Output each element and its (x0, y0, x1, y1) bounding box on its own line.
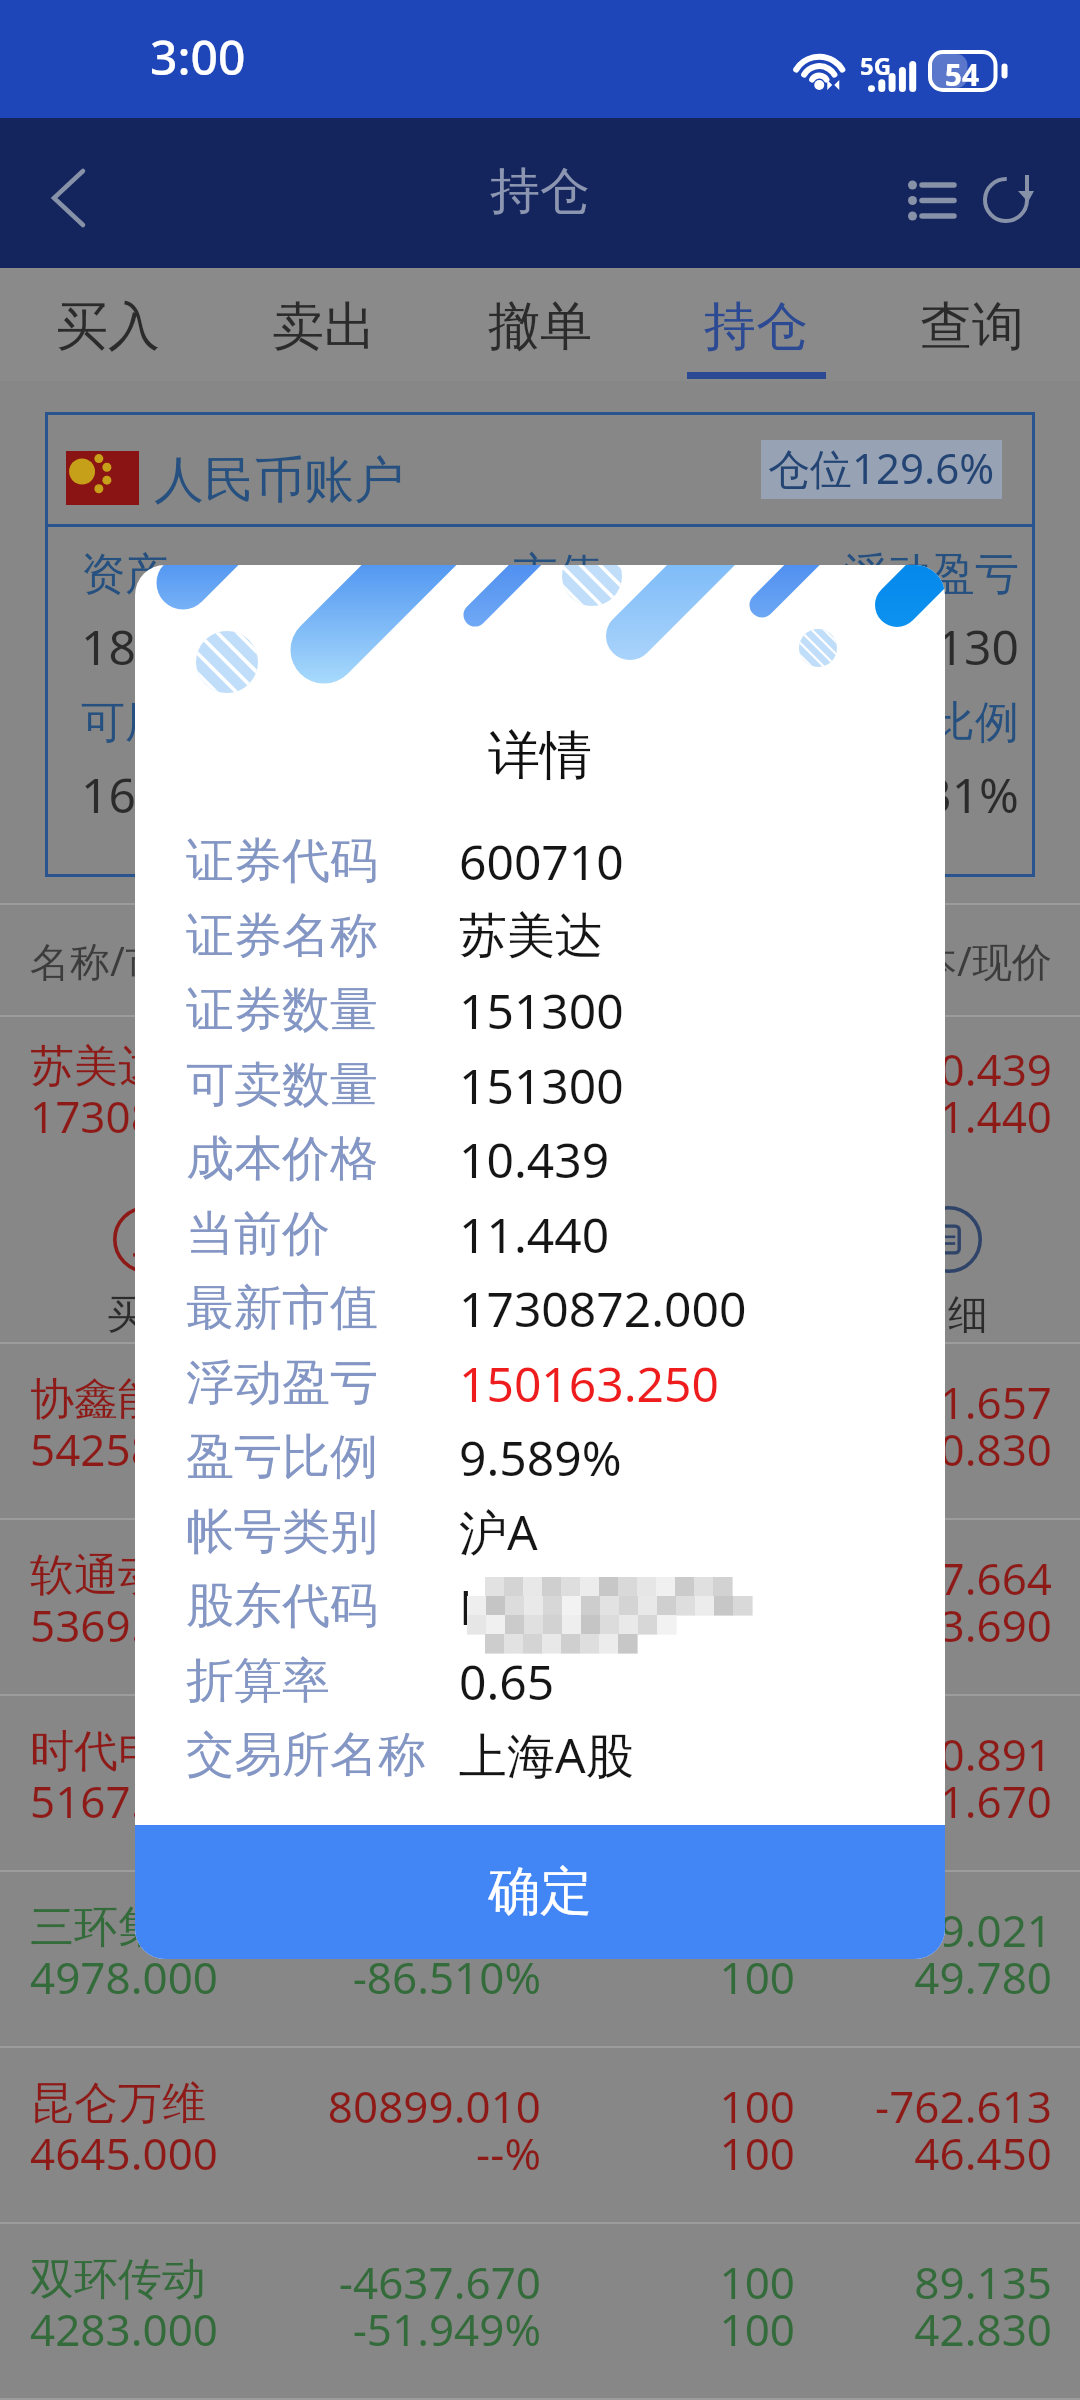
button[interactable]: List view (872, 143, 982, 243)
staticText: 1208.400 (300, 1548, 541, 1608)
staticText: 时代电气 (30, 1724, 206, 1779)
staticText: 51.670 (795, 1771, 1052, 1831)
button[interactable]: 买入 (46, 1206, 247, 1339)
staticText: 行情 (508, 1289, 588, 1339)
staticText: 软通动力 (30, 1548, 206, 1603)
staticText: 证券数量 (186, 980, 459, 1040)
staticText: 帐号类别 (186, 1502, 459, 1562)
staticText: 折算率 (186, 1651, 459, 1711)
staticText: 89.135 (795, 2252, 1052, 2312)
staticText: 三环集团 (30, 1900, 206, 1955)
staticText: 2.631% (716, 762, 1019, 827)
staticText: L 9287 (459, 1574, 682, 1639)
staticText: 10.439 (459, 1127, 610, 1192)
staticText: 最新市值 (186, 1278, 459, 1338)
staticText: 151300 (459, 978, 624, 1043)
staticText: 盈亏比例 (716, 695, 1019, 750)
staticText: 成本/现价 (795, 933, 1052, 988)
staticText: 29.051% (300, 1595, 541, 1655)
staticText: 50.891 (795, 1724, 1052, 1784)
button[interactable]: 双环传动 (0, 2224, 1080, 2398)
button[interactable]: 卖出 (247, 1206, 448, 1339)
button[interactable]: 明细 (848, 1206, 1048, 1339)
staticText: 明细 (908, 1289, 988, 1339)
staticText: 卖出 (308, 1289, 388, 1339)
button[interactable]: 撤单 (648, 1206, 848, 1339)
staticText: 持仓/可用 (541, 933, 795, 988)
staticText: 沪A (459, 1499, 538, 1565)
staticText: 5369.000 (30, 1595, 218, 1655)
staticText: 46711.130 (716, 614, 1019, 679)
staticText: 卖出 (272, 294, 376, 360)
staticText: 可用 (81, 695, 384, 750)
staticText: 浮动盈亏 (716, 547, 1019, 602)
staticText: -762.613 (795, 2076, 1052, 2136)
button[interactable]: 时代电气 (0, 1696, 1080, 1870)
staticText: 可取 (406, 695, 709, 750)
button[interactable]: 人民币账户 (45, 412, 1035, 877)
staticText: 上海A股 (459, 1722, 634, 1788)
button[interactable]: 苏美达 (0, 1015, 1080, 1342)
staticText: 100 (541, 1947, 795, 2007)
staticText: 查询 (920, 294, 1024, 360)
staticText: 150163.250 (459, 1351, 719, 1416)
staticText: 9.589% (300, 1086, 541, 1146)
button[interactable]: 撤单 (432, 268, 648, 381)
button[interactable]: 查询 (864, 268, 1080, 381)
staticText: 可卖数量 (186, 1055, 459, 1115)
staticText: 151300 (541, 1039, 795, 1099)
staticText: -86.510% (300, 1947, 541, 2007)
button[interactable]: 三环集团 (0, 1872, 1080, 2046)
staticText: 昆仑万维 (30, 2076, 206, 2131)
staticText: 资产 (81, 547, 384, 602)
staticText: 证券名称 (186, 906, 459, 966)
staticText: 53.690 (795, 1595, 1052, 1655)
staticText: 46.450 (795, 2123, 1052, 2183)
staticText: 1334567.000 (406, 614, 709, 679)
staticText: 5G (860, 49, 892, 82)
staticText: 100 (541, 2076, 795, 2136)
button[interactable]: 卖出 (216, 268, 432, 381)
button[interactable]: 持仓 (648, 268, 864, 381)
button[interactable]: Refresh (962, 143, 1054, 243)
staticText: 10.439 (795, 1039, 1052, 1099)
staticText: 42.830 (795, 2299, 1052, 2359)
staticText: 协鑫能科 (30, 1372, 206, 1427)
staticText: 9.589% (459, 1425, 622, 1490)
staticText: 股东代码 (186, 1576, 459, 1636)
staticText: 54 (923, 54, 1001, 92)
staticText: 0.65 (459, 1649, 555, 1714)
staticText: 持仓 (490, 160, 590, 223)
staticText: 仓位129.6% (768, 439, 995, 496)
staticText: 确定 (488, 1859, 592, 1925)
staticText: 双环传动 (30, 2252, 206, 2307)
staticText: 4645.000 (30, 2123, 218, 2183)
staticText: 撤单 (488, 294, 592, 360)
staticText: 100 (541, 2123, 795, 2183)
button[interactable]: 确定 (135, 1825, 945, 1959)
staticText: 10.830 (795, 1419, 1052, 1479)
button[interactable]: 买入 (0, 268, 216, 381)
staticText: 151300 (459, 1053, 624, 1118)
staticText: 名称/市值 (30, 933, 300, 988)
staticText: -4637.670 (300, 2252, 541, 2312)
staticText: 100 (541, 1595, 795, 1655)
staticText: 100 (541, 2252, 795, 2312)
button[interactable]: 协鑫能科 (0, 1344, 1080, 1518)
staticText: 8.159% (300, 1771, 541, 1831)
staticText: 3:00 (150, 24, 246, 89)
button[interactable]: 昆仑万维 (0, 2048, 1080, 2222)
staticText: 4978.000 (30, 1947, 218, 2007)
staticText: 11.657 (795, 1372, 1052, 1432)
staticText: 交易所名称 (186, 1725, 459, 1785)
staticText: 6.663% (300, 1419, 541, 1479)
staticText: 9.021 (795, 1900, 1052, 1960)
staticText: 撤单 (708, 1289, 788, 1339)
button[interactable]: 软通动力 (0, 1520, 1080, 1694)
staticText: 11.440 (459, 1202, 610, 1267)
button[interactable]: 行情 (448, 1206, 648, 1339)
button[interactable]: Back (0, 118, 140, 268)
staticText: 54258.000 (30, 1419, 244, 1479)
staticText: 苏美达 (30, 1039, 162, 1094)
staticText: 人民币账户 (154, 449, 404, 512)
